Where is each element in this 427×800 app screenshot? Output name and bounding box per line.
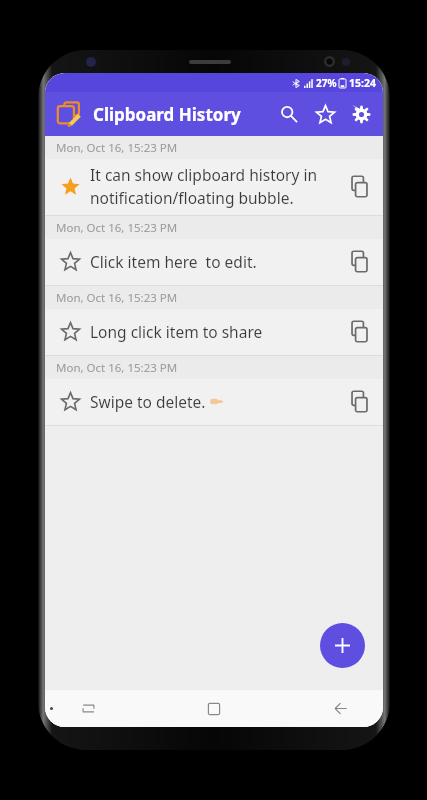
button[interactable]: Star — [53, 384, 87, 418]
staticText: notification/floating bubble. — [90, 187, 294, 208]
button[interactable]: Mon, Oct 16, 15:23 PM — [45, 286, 383, 356]
button[interactable]: Mon, Oct 16, 15:23 PM — [45, 136, 383, 216]
button[interactable]: Copy — [342, 314, 376, 348]
staticText: 15:24 — [349, 76, 376, 90]
button[interactable]: Star — [53, 244, 87, 278]
button[interactable]: Copy — [342, 169, 376, 203]
button[interactable]: Copy — [342, 244, 376, 278]
button[interactable]: Back — [321, 690, 359, 727]
button[interactable]: Home — [195, 690, 233, 727]
button[interactable]: Unstar — [53, 169, 87, 203]
staticText: Long click item to share — [90, 321, 263, 342]
button[interactable]: Star — [53, 314, 87, 348]
button[interactable]: Mon, Oct 16, 15:23 PM — [45, 356, 383, 426]
button[interactable]: Settings — [343, 96, 379, 132]
staticText: 27% — [316, 76, 337, 90]
button[interactable]: Copy — [342, 384, 376, 418]
button[interactable]: Recents — [69, 690, 107, 727]
button[interactable]: Add — [320, 623, 365, 668]
button[interactable]: Favourites — [307, 96, 343, 132]
staticText: Mon, Oct 16, 15:23 PM — [56, 220, 178, 236]
staticText: It can show clipboard history in — [90, 164, 318, 185]
staticText: Mon, Oct 16, 15:23 PM — [56, 360, 178, 376]
staticText: Mon, Oct 16, 15:23 PM — [56, 290, 178, 306]
staticText: Clipboard History — [93, 103, 241, 126]
button[interactable]: Clipboard History — [53, 98, 85, 130]
button[interactable]: Search — [271, 96, 307, 132]
staticText: Click item here to edit. — [90, 251, 257, 272]
button[interactable]: Mon, Oct 16, 15:23 PM — [45, 216, 383, 286]
staticText: Swipe to delete. — [90, 391, 206, 412]
staticText: Mon, Oct 16, 15:23 PM — [56, 140, 178, 156]
